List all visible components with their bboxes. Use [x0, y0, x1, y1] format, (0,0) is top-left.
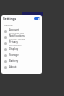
staticText: Sounds, vibrate	[9, 38, 25, 40]
staticText: Settings	[3, 17, 17, 21]
button[interactable]: Toggle	[34, 17, 40, 20]
staticText: General	[4, 23, 13, 26]
button[interactable]: Notifications	[1, 34, 42, 40]
staticText: Battery	[9, 59, 19, 63]
button[interactable]: Display	[1, 46, 42, 52]
staticText: Permissions	[9, 44, 22, 46]
staticText: you@mail.com	[9, 32, 25, 34]
button[interactable]: Account	[1, 28, 42, 34]
staticText: Account	[9, 28, 20, 32]
button[interactable]: Settings	[1, 16, 42, 21]
button[interactable]: Battery	[1, 58, 42, 64]
staticText: Storage	[9, 53, 19, 57]
staticText: Display	[9, 47, 19, 51]
button[interactable]: Storage	[1, 52, 42, 58]
button[interactable]: Privacy	[1, 40, 42, 46]
staticText: Notifications	[9, 34, 25, 38]
staticText: Privacy	[9, 40, 18, 44]
button[interactable]: About	[1, 64, 42, 70]
staticText: About	[9, 65, 17, 69]
